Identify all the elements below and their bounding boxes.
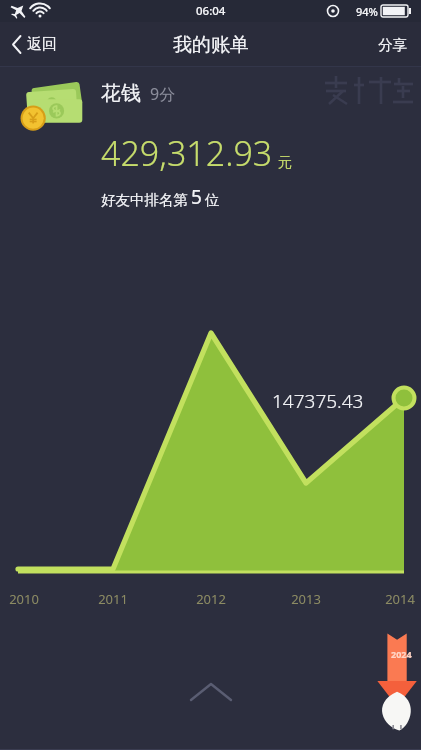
staticText: 返回 (27, 35, 57, 54)
button[interactable]: Collapse (175, 666, 247, 716)
button[interactable]: 147375.43 (272, 388, 364, 414)
button[interactable]: 分享 (364, 28, 421, 62)
button[interactable]: 返回 (0, 29, 69, 60)
staticText: 花钱 (101, 81, 141, 106)
button[interactable]: 2024 rocket (369, 626, 415, 732)
staticText: 9分 (150, 83, 176, 105)
staticText: 2013 (285, 590, 327, 608)
staticText: 元 (278, 154, 292, 172)
staticText: 好友中排名第 (101, 191, 188, 209)
staticText: 429,312.93 (101, 130, 273, 176)
staticText: 2010 (3, 590, 45, 608)
staticText: 06:04 (196, 3, 226, 19)
staticText: 位 (205, 191, 220, 209)
staticText: 2011 (92, 590, 134, 608)
staticText: 94% (356, 4, 378, 19)
staticText: 2014 (379, 590, 421, 608)
staticText: 2024 (391, 648, 412, 660)
staticText: 5 (191, 184, 202, 210)
staticText: 分享 (378, 36, 407, 54)
staticText: 2012 (190, 590, 232, 608)
staticText: 我的账单 (173, 33, 249, 57)
